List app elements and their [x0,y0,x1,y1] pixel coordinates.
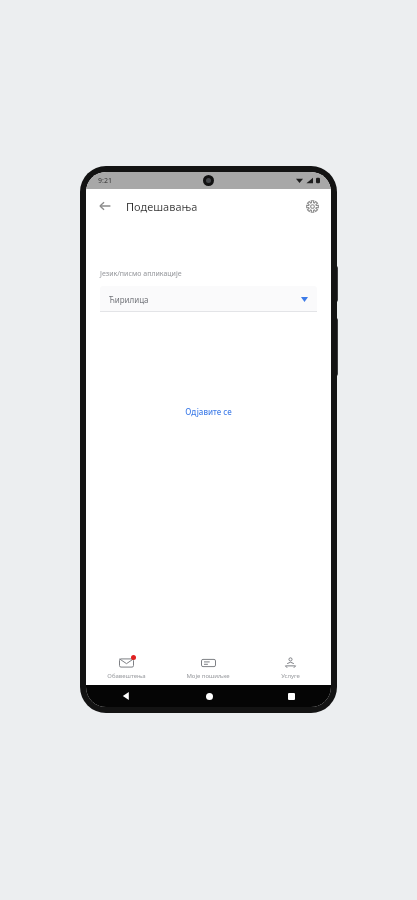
button[interactable]: Назад [116,686,136,706]
staticText: Подешавања [126,199,198,214]
button[interactable]: Недавно [281,686,301,706]
staticText: Моје пошиљке [186,672,230,680]
button[interactable]: Подешавања [301,195,323,217]
staticText: Ћирилица [109,294,149,305]
button[interactable]: Ћирилица [100,286,317,312]
button[interactable]: Услуге [249,653,331,684]
staticText: Језик/писмо апликације [100,269,182,279]
staticText: Обавештења [107,672,146,680]
button[interactable]: Одјавите се [175,401,242,422]
button[interactable]: Почетна [199,686,219,706]
staticText: 9:21 [98,176,112,186]
button[interactable]: Назад [94,195,116,217]
button[interactable]: Обавештења [86,653,167,684]
staticText: Услуге [281,672,300,680]
button[interactable]: Моје пошиљке [167,653,249,684]
